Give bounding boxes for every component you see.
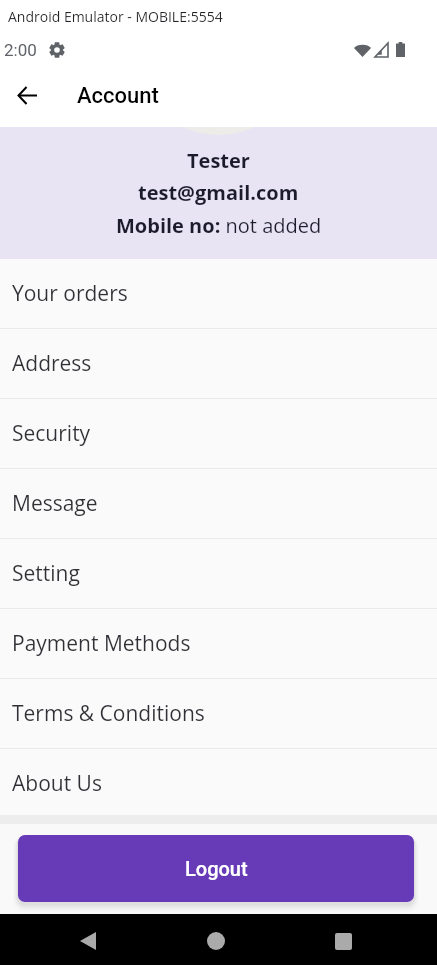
staticText: Setting — [12, 559, 80, 588]
button[interactable]: Payment Methods — [0, 609, 437, 678]
staticText: Android Emulator - MOBILE:5554 — [8, 7, 223, 26]
staticText: Payment Methods — [12, 629, 191, 658]
staticText: Terms & Conditions — [12, 699, 205, 728]
button[interactable]: Back — [7, 75, 47, 115]
staticText: Account — [77, 83, 159, 109]
staticText: Logout — [185, 857, 248, 880]
button[interactable]: Message — [0, 469, 437, 538]
staticText: About Us — [12, 769, 102, 798]
button[interactable]: About Us — [0, 749, 437, 818]
staticText: test@gmail.com — [138, 179, 299, 206]
button[interactable]: Back — [64, 917, 112, 965]
staticText: Tester — [187, 147, 250, 174]
button[interactable]: Logout — [18, 835, 414, 902]
button[interactable]: Home — [192, 917, 240, 965]
button[interactable]: Setting — [0, 539, 437, 608]
button[interactable]: Security — [0, 399, 437, 468]
staticText: Mobile no: not added — [116, 212, 322, 239]
button[interactable]: Your orders — [0, 259, 437, 328]
button[interactable]: Terms & Conditions — [0, 679, 437, 748]
staticText: Your orders — [12, 279, 128, 308]
staticText: Address — [12, 349, 92, 378]
staticText: Message — [12, 489, 98, 518]
staticText: 2:00 — [4, 40, 37, 60]
button[interactable]: Recent apps — [319, 917, 367, 965]
staticText: Security — [12, 419, 91, 448]
button[interactable]: Address — [0, 329, 437, 398]
